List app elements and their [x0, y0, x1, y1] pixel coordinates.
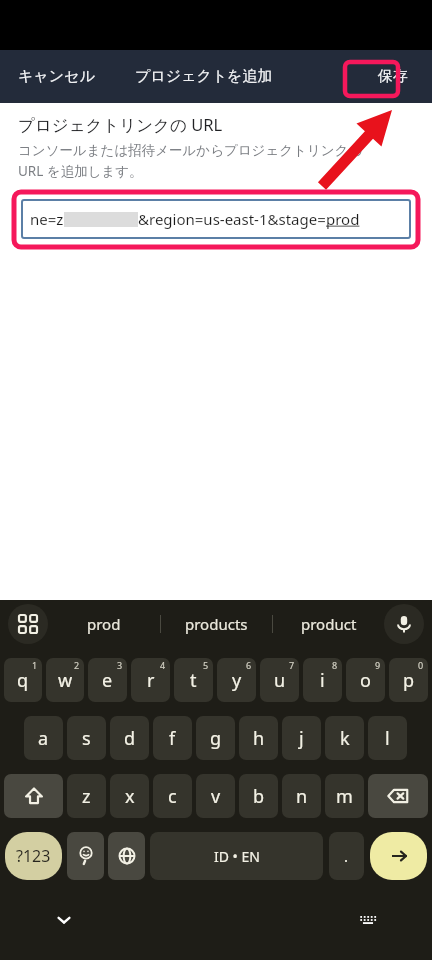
button[interactable]: q	[4, 658, 42, 702]
button[interactable]: ne=z	[22, 200, 410, 238]
staticText: ?123	[16, 845, 51, 867]
staticText: x	[125, 784, 135, 809]
staticText: .	[344, 846, 349, 866]
staticText: q	[17, 668, 29, 693]
staticText: 保存	[378, 67, 408, 86]
staticText: ID • EN	[214, 847, 260, 866]
button[interactable]: n	[282, 774, 321, 818]
button[interactable]: product	[273, 600, 384, 648]
button[interactable]: ?123	[5, 832, 62, 880]
button[interactable]: l	[368, 716, 407, 760]
staticText: 2	[74, 659, 80, 671]
button[interactable]: j	[282, 716, 321, 760]
button[interactable]: d	[110, 716, 149, 760]
button[interactable]: e	[88, 658, 127, 702]
button[interactable]: prod	[48, 600, 160, 648]
staticText: c	[168, 784, 177, 809]
button[interactable]: r	[131, 658, 170, 702]
staticText: l	[385, 726, 390, 751]
button[interactable]: Keyboard toolbar	[8, 604, 48, 644]
staticText: h	[253, 726, 265, 751]
button[interactable]: products	[161, 600, 272, 648]
staticText: products	[185, 614, 248, 634]
button[interactable]: Enter	[370, 832, 427, 880]
button[interactable]: a	[24, 716, 63, 760]
button[interactable]: v	[196, 774, 235, 818]
staticText: 5	[203, 659, 209, 671]
button[interactable]: キャンセル	[12, 61, 101, 92]
staticText: g	[210, 726, 222, 751]
button[interactable]: Hide keyboard	[46, 902, 82, 938]
button[interactable]: g	[196, 716, 235, 760]
staticText: 3	[117, 659, 123, 671]
button[interactable]: s	[67, 716, 106, 760]
button[interactable]: h	[239, 716, 278, 760]
staticText: プロジェクトリンクの URL	[18, 113, 223, 136]
staticText: キャンセル	[18, 67, 95, 86]
button[interactable]: Language	[108, 832, 145, 880]
staticText: e	[102, 668, 113, 693]
staticText: w	[58, 668, 73, 693]
staticText: 8	[332, 659, 338, 671]
staticText: i	[320, 668, 325, 693]
staticText: k	[340, 726, 350, 751]
staticText: b	[253, 784, 265, 809]
staticText: v	[211, 784, 221, 809]
staticText: product	[301, 614, 357, 634]
button[interactable]: o	[346, 658, 385, 702]
button[interactable]: k	[325, 716, 364, 760]
staticText: ne=z	[30, 209, 64, 229]
staticText: m	[336, 784, 353, 809]
staticText: u	[274, 668, 286, 693]
staticText: 9	[375, 659, 381, 671]
button[interactable]: Backspace	[368, 774, 428, 818]
staticText: コンソールまたは招待メールからプロジェクトリンクの	[18, 142, 363, 159]
staticText: 7	[289, 659, 295, 671]
staticText: f	[169, 726, 176, 751]
staticText: t	[190, 668, 197, 693]
staticText: URL を追加します。	[18, 162, 143, 180]
staticText: 4	[160, 659, 166, 671]
button[interactable]: Switch keyboard	[350, 902, 386, 938]
button[interactable]: f	[153, 716, 192, 760]
staticText: 0	[418, 659, 424, 671]
staticText: 6	[246, 659, 252, 671]
button[interactable]: u	[260, 658, 299, 702]
staticText: &region=us-east-1&stage=	[138, 209, 326, 229]
staticText: プロジェクトを追加	[135, 67, 273, 86]
button[interactable]: z	[67, 774, 106, 818]
staticText: z	[82, 784, 91, 809]
button[interactable]: i	[303, 658, 342, 702]
staticText: y	[232, 668, 242, 693]
button[interactable]: y	[217, 658, 256, 702]
button[interactable]: t	[174, 658, 213, 702]
button[interactable]: c	[153, 774, 192, 818]
button[interactable]: ID • EN	[150, 832, 323, 880]
staticText: s	[82, 726, 91, 751]
button[interactable]: p	[389, 658, 428, 702]
staticText: prod	[326, 209, 360, 229]
button[interactable]: b	[239, 774, 278, 818]
button[interactable]: Emoji	[67, 832, 104, 880]
button[interactable]: w	[46, 658, 84, 702]
button[interactable]: x	[110, 774, 149, 818]
button[interactable]: Shift	[4, 774, 63, 818]
staticText: o	[360, 668, 371, 693]
staticText: prod	[87, 614, 121, 634]
staticText: r	[147, 668, 155, 693]
staticText: p	[403, 668, 415, 693]
button[interactable]: .	[329, 832, 364, 880]
button[interactable]: m	[325, 774, 364, 818]
staticText: n	[296, 784, 308, 809]
staticText: 1	[32, 659, 38, 671]
staticText: j	[299, 726, 304, 751]
staticText: d	[124, 726, 136, 751]
button[interactable]: Voice input	[384, 604, 424, 644]
button[interactable]: 保存	[372, 61, 414, 92]
staticText: a	[38, 726, 49, 751]
